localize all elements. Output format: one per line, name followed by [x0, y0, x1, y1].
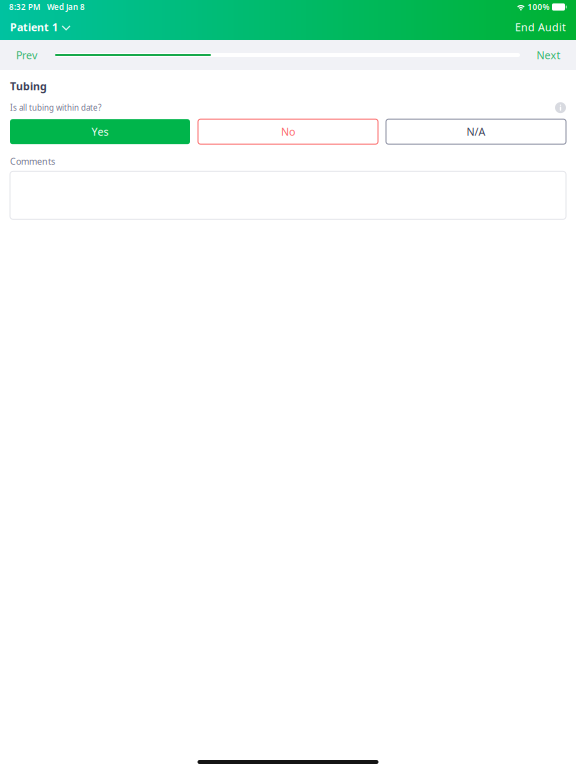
- staticText: Wed Jan 8: [47, 2, 85, 12]
- staticText: Patient 1: [10, 20, 58, 34]
- staticText: Prev: [16, 48, 37, 62]
- button[interactable]: Patient 1: [0, 14, 81, 40]
- staticText: N/A: [466, 125, 485, 139]
- staticText: 100%: [527, 2, 549, 12]
- staticText: Next: [536, 48, 560, 62]
- staticText: Yes: [91, 125, 108, 139]
- staticText: Is all tubing within date?: [10, 102, 101, 113]
- button[interactable]: End Audit: [505, 14, 576, 40]
- button[interactable]: No: [198, 119, 378, 144]
- staticText: End Audit: [515, 20, 566, 34]
- button[interactable]: Yes: [10, 119, 190, 144]
- button[interactable]: More information: [555, 102, 566, 113]
- button[interactable]: Next: [526, 40, 571, 70]
- staticText: No: [281, 125, 295, 139]
- button[interactable]: Prev: [4, 40, 49, 70]
- staticText: 8:32 PM: [9, 2, 40, 12]
- button[interactable]: N/A: [386, 119, 566, 144]
- staticText: Comments: [10, 155, 55, 167]
- staticText: Tubing: [10, 79, 47, 93]
